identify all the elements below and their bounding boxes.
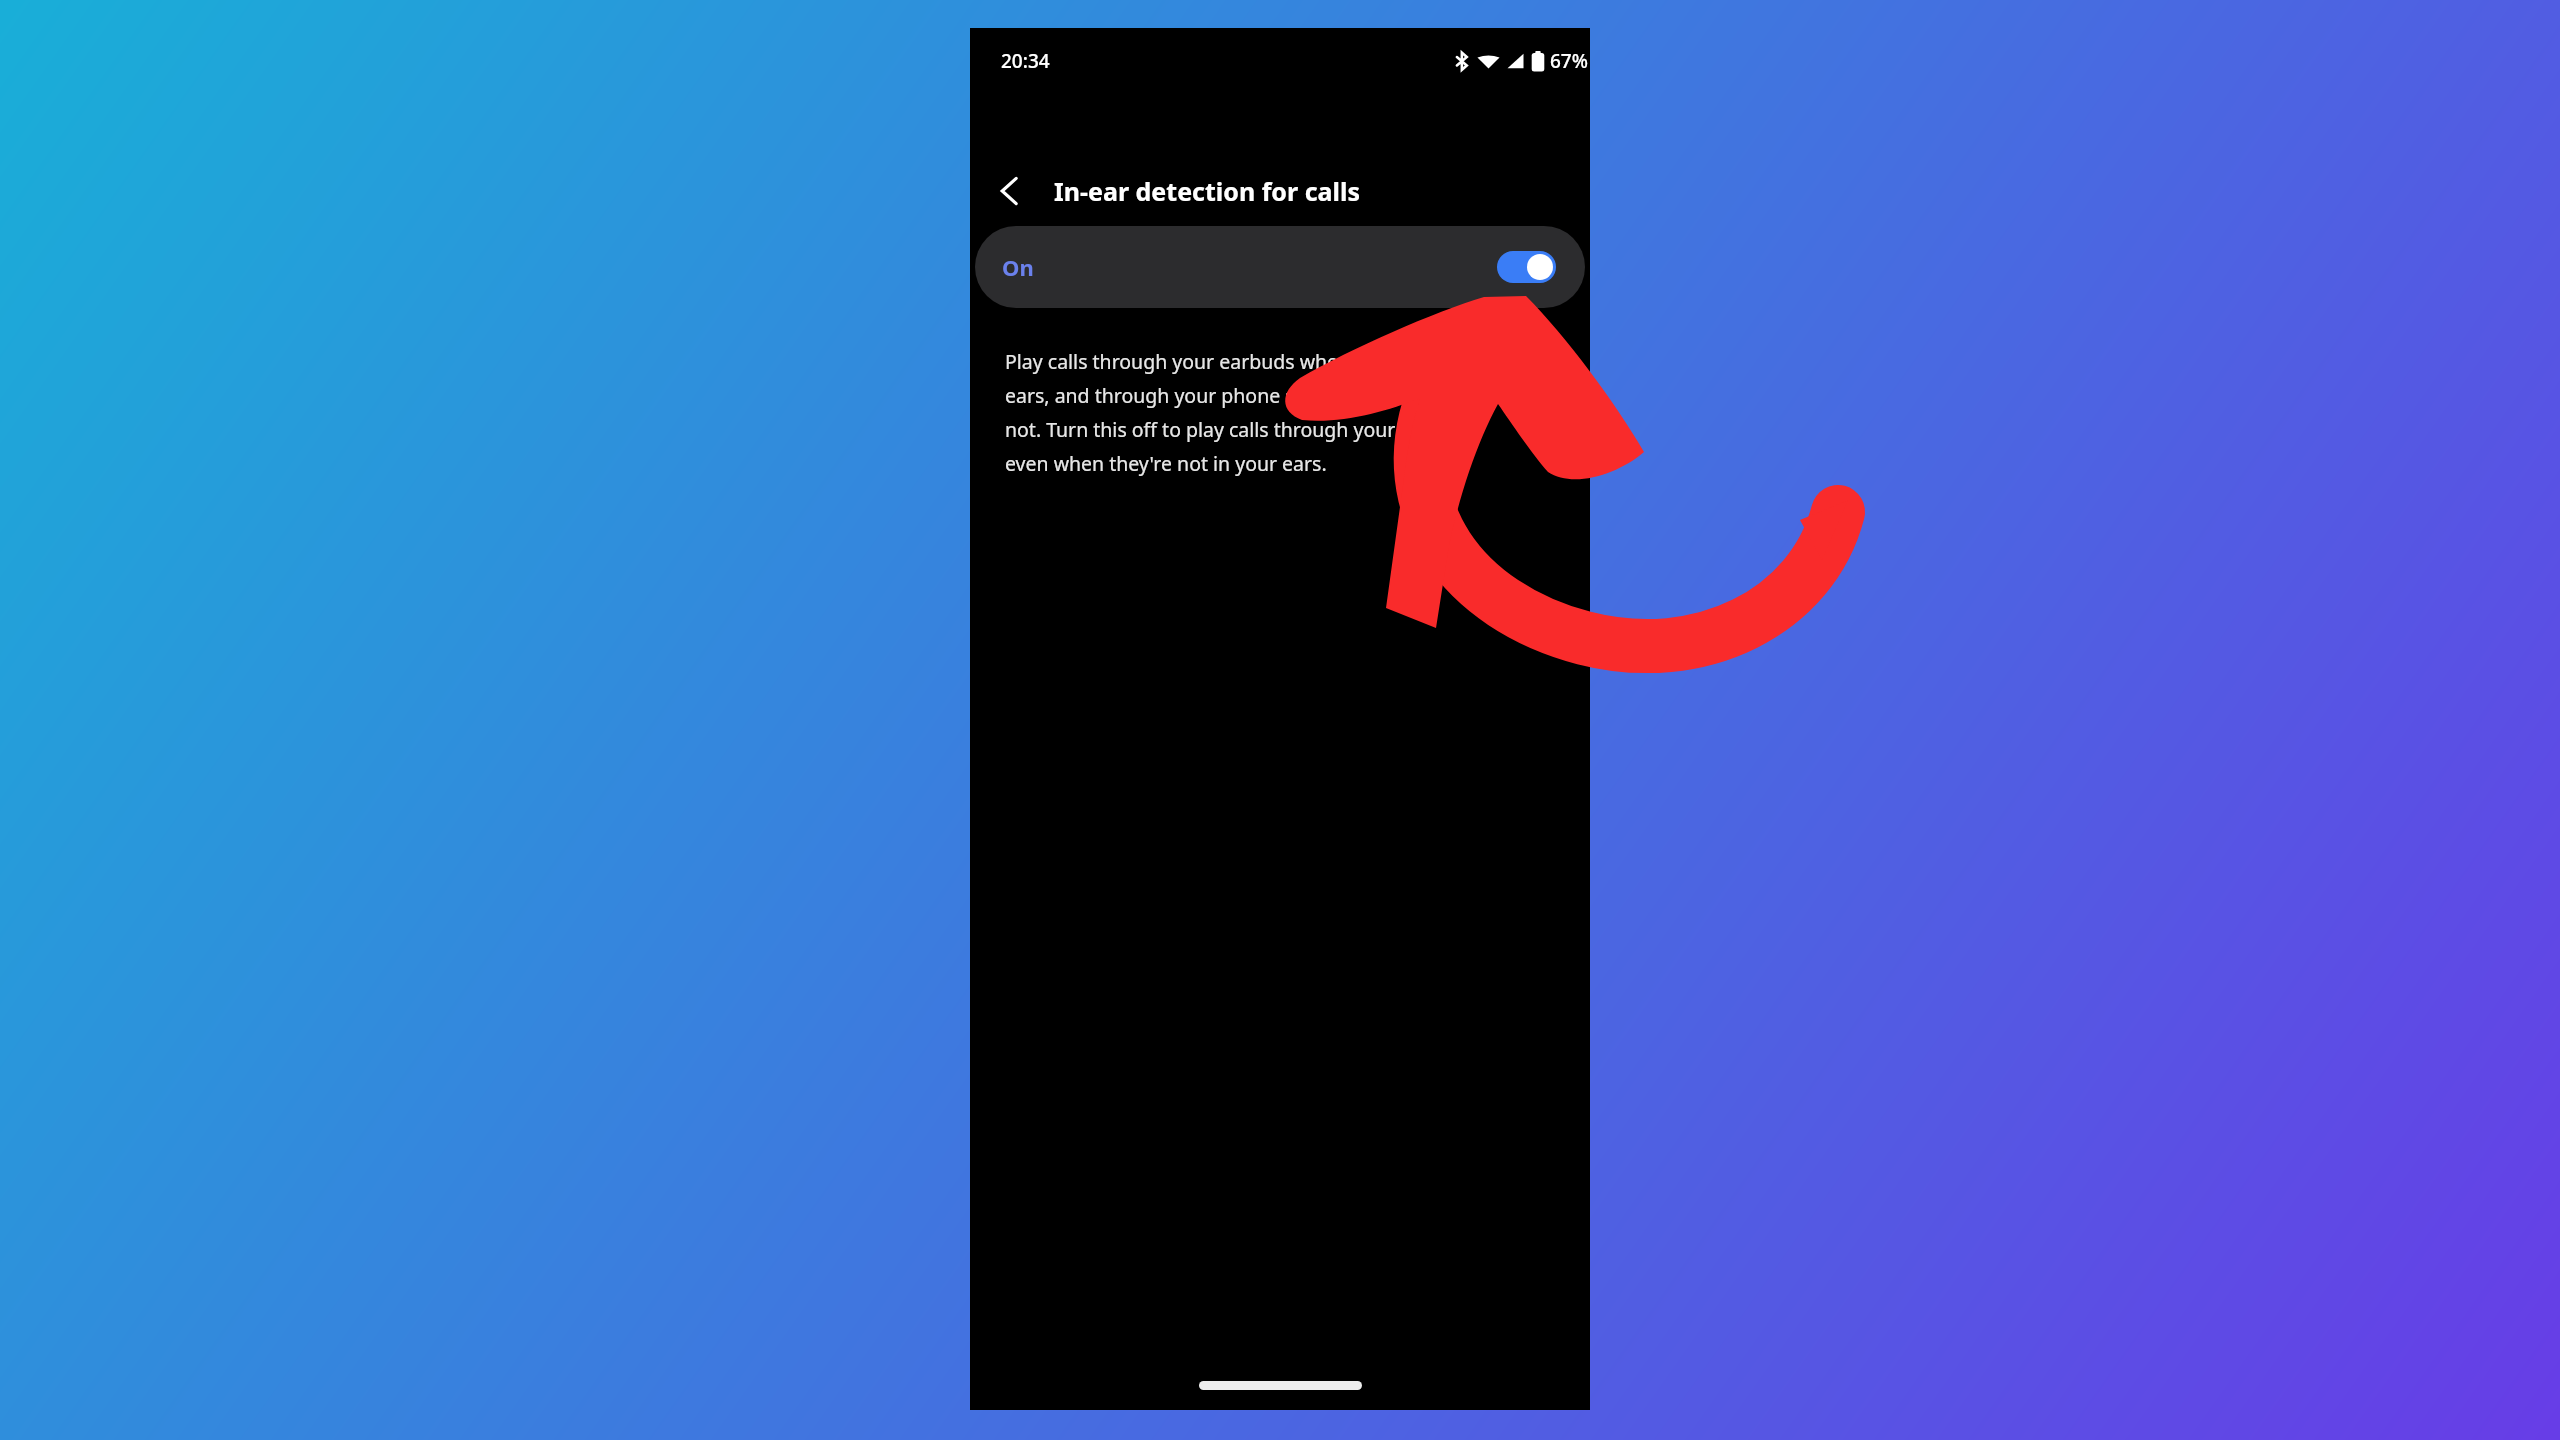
staticText: 20:34 <box>1001 48 1050 74</box>
button[interactable]: On <box>975 226 1585 308</box>
staticText: 67% <box>1550 48 1588 74</box>
staticText: On <box>1002 252 1034 282</box>
staticText: In-ear detection for calls <box>1054 174 1360 208</box>
staticText: Play calls through your earbuds when the… <box>1005 348 1503 476</box>
button[interactable]: Back <box>986 168 1032 214</box>
